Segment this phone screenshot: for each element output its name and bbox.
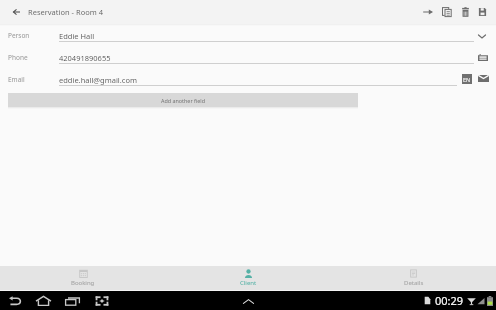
button[interactable]: Copy [437, 0, 456, 24]
button[interactable]: Delete [456, 0, 475, 24]
staticText: 00:29 [435, 293, 464, 308]
button[interactable]: Dial pad [477, 52, 488, 62]
button[interactable]: Client [166, 266, 331, 290]
staticText: EN [463, 76, 471, 83]
staticText: Client [240, 279, 257, 287]
staticText: Booking [71, 279, 95, 287]
staticText: eddie.hall@gmail.com [59, 75, 137, 85]
button[interactable]: Booking [0, 266, 166, 290]
button[interactable]: Expand [477, 31, 487, 41]
button[interactable]: Home [34, 291, 53, 310]
staticText: Email [8, 75, 25, 84]
staticText: Phone [8, 53, 28, 62]
button[interactable]: Add another field [8, 93, 358, 107]
button[interactable]: Save [473, 0, 492, 24]
button[interactable]: Expand system bar [239, 293, 257, 309]
staticText: Add another field [161, 97, 206, 104]
button[interactable]: Back [5, 291, 24, 310]
button[interactable]: Language EN [461, 73, 472, 84]
button[interactable]: Screenshot [92, 291, 111, 310]
button[interactable]: Send [418, 0, 437, 24]
staticText: Person [8, 31, 30, 40]
button[interactable]: Recent apps [63, 291, 82, 310]
button[interactable]: Send email [477, 74, 489, 83]
staticText: Eddie Hall [59, 31, 95, 41]
staticText: Details [404, 279, 424, 287]
button[interactable]: Back [6, 0, 26, 24]
button[interactable]: Details [331, 266, 496, 290]
staticText: 420491890655 [59, 53, 111, 63]
staticText: Reservation - Room 4 [28, 7, 103, 17]
